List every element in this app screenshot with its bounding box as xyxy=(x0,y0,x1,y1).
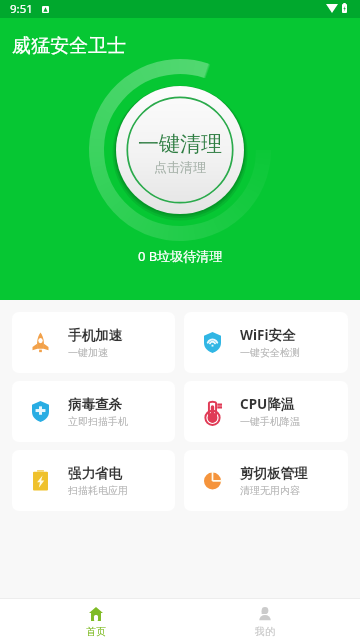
staticText: 清理无用内容 xyxy=(240,484,300,497)
button[interactable]: 手机加速 xyxy=(12,312,175,373)
button[interactable]: CPU降温 xyxy=(184,381,348,442)
staticText: 一键加速 xyxy=(68,346,108,359)
staticText: 点击清理 xyxy=(154,159,206,175)
staticText: 一键清理 xyxy=(138,131,222,157)
staticText: 手机加速 xyxy=(68,327,122,344)
staticText: 病毒查杀 xyxy=(68,396,122,413)
staticText: CPU降温 xyxy=(240,395,295,413)
button[interactable]: 首页 xyxy=(55,598,136,640)
staticText: 0 B垃圾待清理 xyxy=(138,247,223,265)
staticText: 扫描耗电应用 xyxy=(68,484,128,497)
staticText: 一键安全检测 xyxy=(240,346,300,359)
button[interactable]: 一键清理 xyxy=(116,86,244,214)
button[interactable]: 剪切板管理 xyxy=(184,450,348,511)
staticText: 剪切板管理 xyxy=(240,465,308,482)
button[interactable]: 强力省电 xyxy=(12,450,175,511)
staticText: 立即扫描手机 xyxy=(68,415,128,428)
staticText: 首页 xyxy=(86,625,106,638)
button[interactable]: 我的 xyxy=(224,598,305,640)
staticText: 威猛安全卫士 xyxy=(12,34,126,58)
staticText: 一键手机降温 xyxy=(240,415,300,428)
button[interactable]: 病毒查杀 xyxy=(12,381,175,442)
button[interactable]: WiFi安全 xyxy=(184,312,348,373)
staticText: 我的 xyxy=(255,625,275,638)
staticText: 强力省电 xyxy=(68,465,122,482)
staticText: WiFi安全 xyxy=(240,326,296,344)
staticText: 9:51 xyxy=(10,1,33,17)
